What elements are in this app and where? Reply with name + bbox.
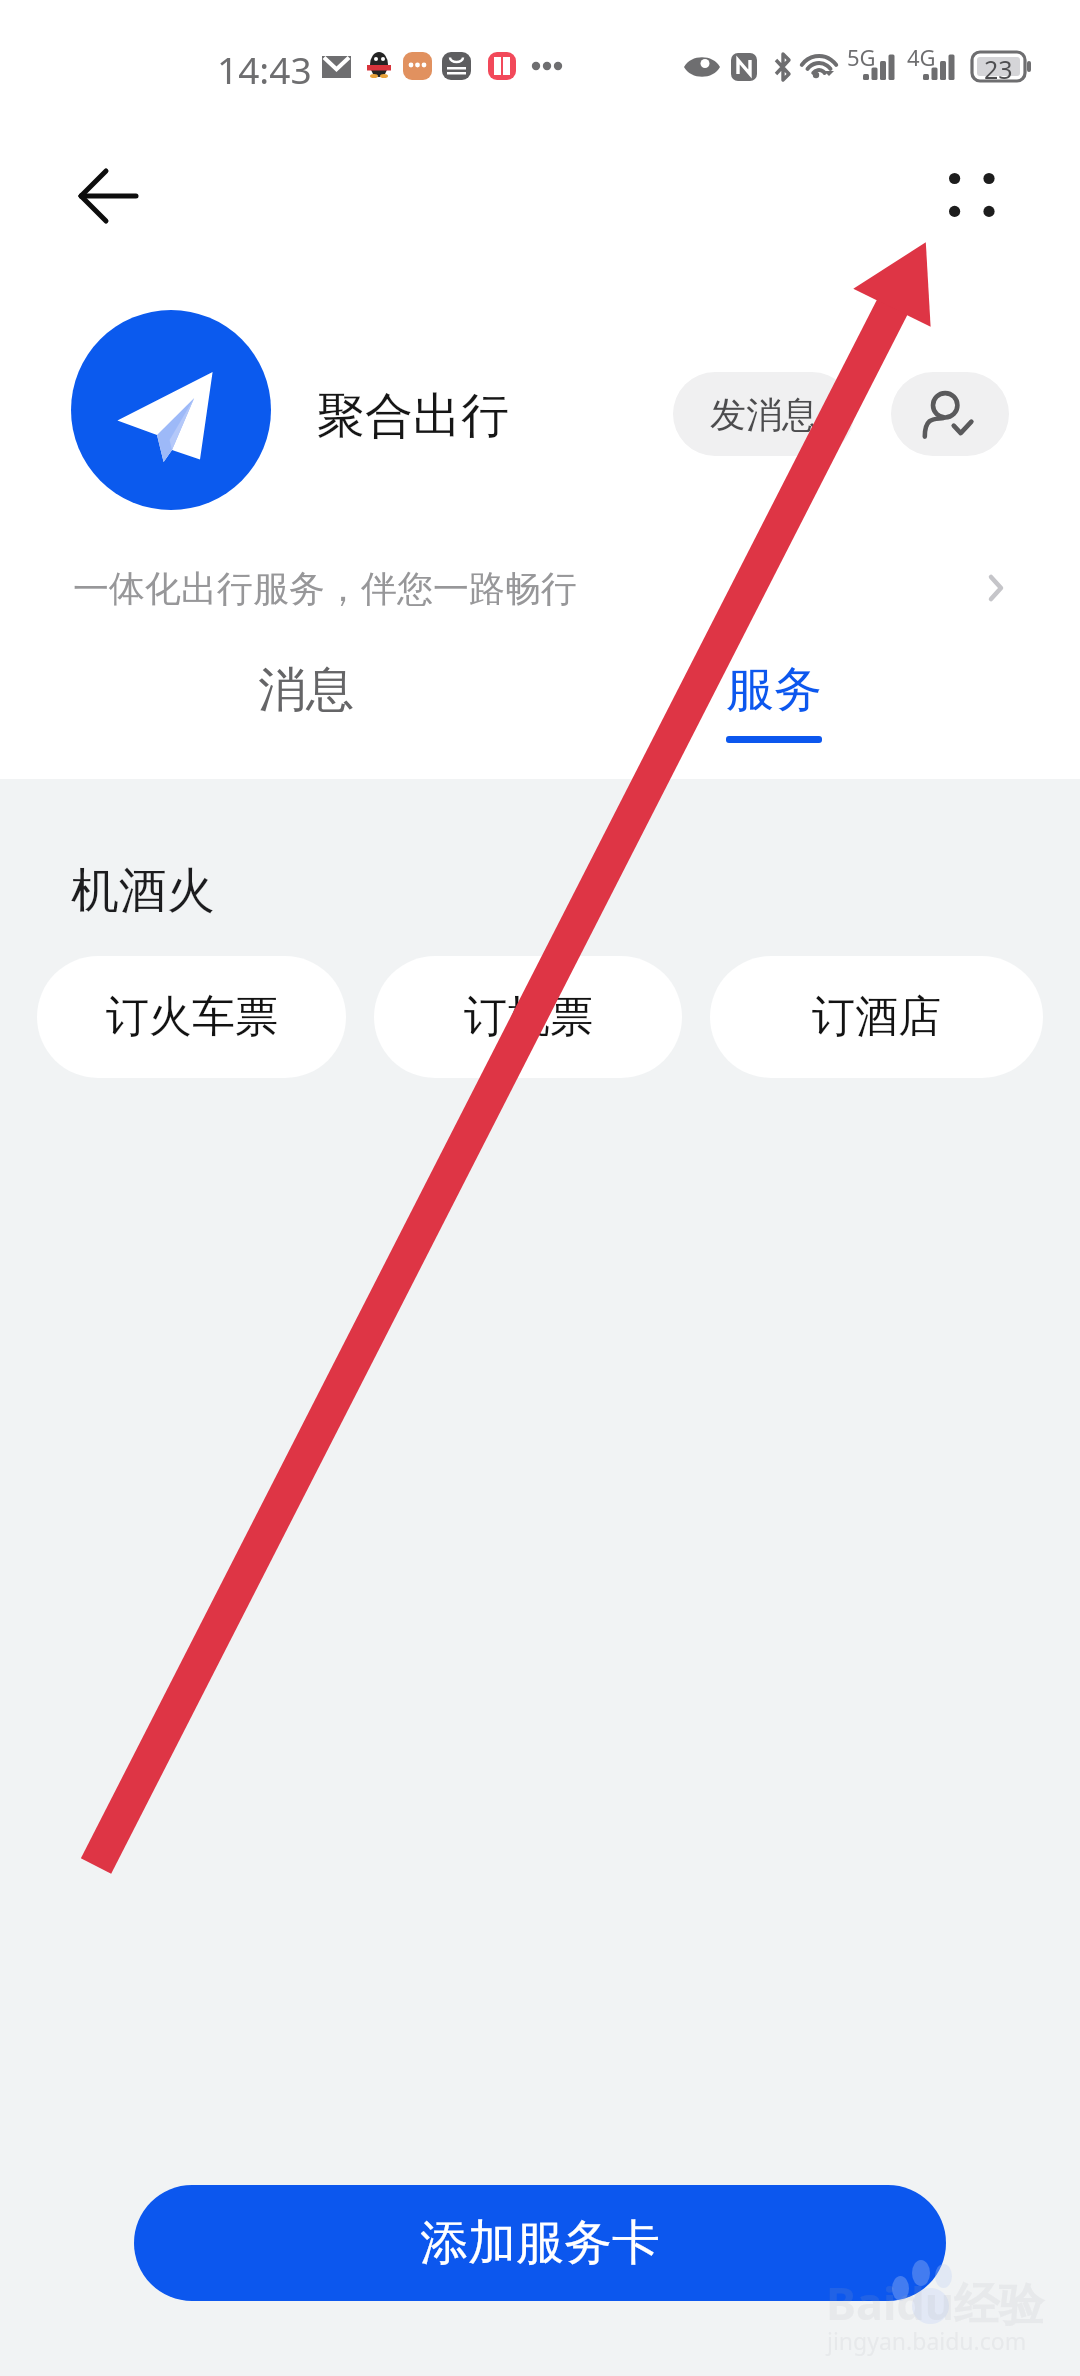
- button[interactable]: 一体化出行服务，伴您一路畅行: [0, 530, 1080, 642]
- staticText: 聚合出行: [317, 386, 509, 446]
- button[interactable]: 服务: [628, 630, 920, 779]
- staticText: 消息: [258, 660, 354, 720]
- button[interactable]: Account avatar: [71, 310, 271, 510]
- button[interactable]: 添加服务卡: [134, 2185, 946, 2301]
- staticText: 添加服务卡: [420, 2213, 660, 2273]
- staticText: 订机票: [464, 990, 593, 1044]
- staticText: 订火车票: [106, 990, 278, 1044]
- button[interactable]: 订机票: [374, 956, 682, 1078]
- staticText: 一体化出行服务，伴您一路畅行: [73, 566, 577, 611]
- staticText: jingyan.baidu.com: [827, 2325, 1027, 2356]
- staticText: 5G: [847, 42, 876, 72]
- button[interactable]: 订酒店: [710, 956, 1043, 1078]
- staticText: 23: [984, 52, 1013, 81]
- staticText: 发消息: [710, 392, 818, 437]
- button[interactable]: Follow account: [891, 372, 1009, 456]
- staticText: 机酒火: [71, 861, 215, 921]
- staticText: 服务: [726, 660, 822, 720]
- button[interactable]: More options: [922, 145, 1022, 245]
- button[interactable]: 消息: [160, 630, 452, 779]
- button[interactable]: 订火车票: [37, 956, 346, 1078]
- button[interactable]: Back: [50, 140, 170, 252]
- staticText: 4G: [907, 42, 936, 72]
- button[interactable]: 发消息: [673, 372, 854, 456]
- staticText: 订酒店: [812, 990, 941, 1044]
- staticText: Baidu经验: [826, 2272, 1045, 2333]
- staticText: 14:43: [217, 44, 312, 94]
